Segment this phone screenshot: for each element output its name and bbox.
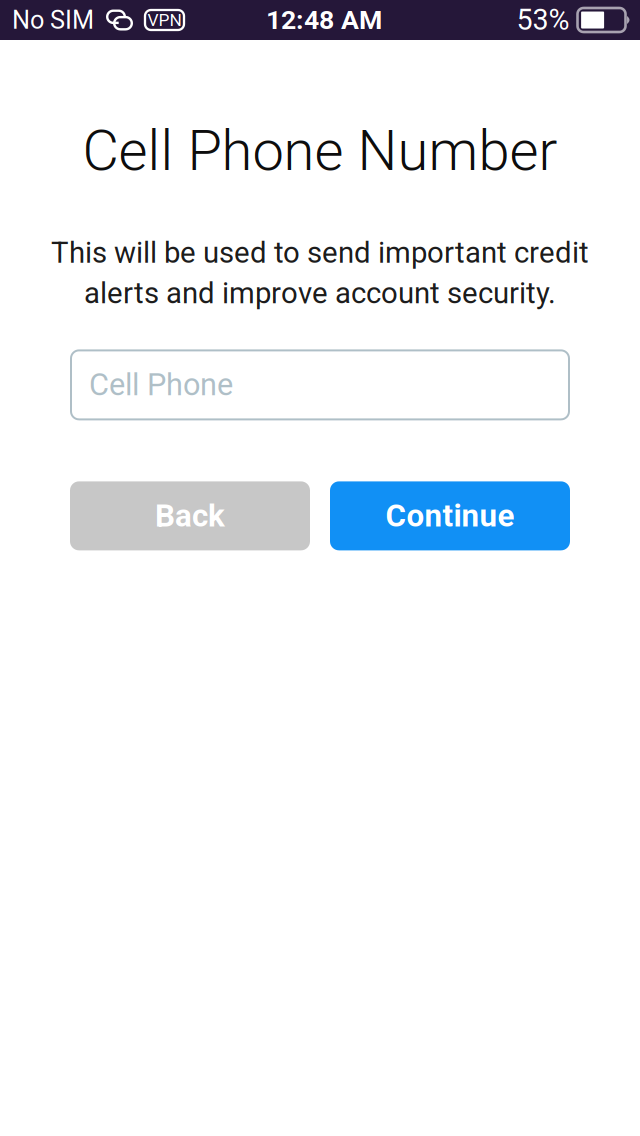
staticText: Cell Phone <box>89 367 233 403</box>
staticText: VPN <box>147 10 181 30</box>
staticText: 53% <box>516 3 569 37</box>
staticText: This will be used to send important cred… <box>51 236 589 270</box>
button[interactable]: Continue <box>330 481 570 550</box>
staticText: Back <box>155 497 225 534</box>
staticText: Cell Phone Number <box>82 118 557 184</box>
staticText: No SIM <box>12 5 94 35</box>
button[interactable]: Back <box>70 481 310 550</box>
staticText: alerts and improve account security. <box>84 276 556 310</box>
staticText: 12:48 AM <box>266 4 382 36</box>
button[interactable]: Cell Phone <box>71 350 569 419</box>
staticText: Continue <box>385 497 514 534</box>
